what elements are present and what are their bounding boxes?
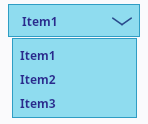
button[interactable]: Item3 [12, 92, 135, 114]
button[interactable]: Item1 [12, 44, 135, 66]
staticText: Item3 [20, 95, 56, 111]
button[interactable]: Item2 [12, 68, 135, 90]
staticText: Item1 [20, 47, 56, 63]
button[interactable]: Open dropdown [111, 14, 133, 28]
staticText: Item1 [22, 13, 58, 29]
staticText: Item2 [20, 71, 56, 87]
button[interactable]: Item1 [8, 4, 140, 37]
